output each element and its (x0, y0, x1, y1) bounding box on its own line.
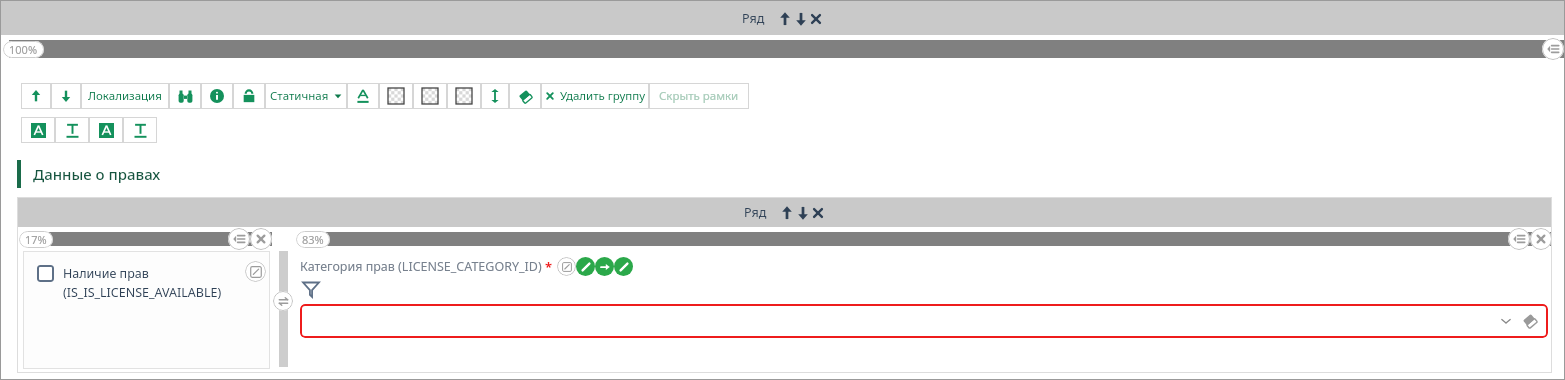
button[interactable]: Move down (795, 205, 811, 221)
button[interactable]: Move up (779, 205, 795, 221)
staticText: * (545, 258, 553, 276)
button[interactable]: Edit (576, 257, 595, 276)
button[interactable]: Скрыть рамки (649, 83, 749, 109)
button[interactable]: Swap columns (273, 291, 293, 311)
staticText: Данные о правах (33, 164, 161, 184)
button[interactable]: Background 3 (447, 83, 481, 109)
staticText: Ряд (742, 10, 765, 27)
button[interactable]: Move up (777, 11, 793, 27)
staticText: 17% (25, 232, 47, 247)
button[interactable]: Локализация (81, 83, 169, 109)
button[interactable]: Move down (51, 83, 81, 109)
button[interactable]: Font color (347, 83, 379, 109)
staticText: Локализация (88, 88, 162, 104)
staticText: Статичная (270, 88, 329, 104)
staticText: Удалить группу (560, 88, 646, 104)
button[interactable]: Edit field (245, 261, 266, 282)
staticText: (IS_IS_LICENSE_AVAILABLE) (63, 284, 222, 301)
button[interactable]: Close column (250, 228, 272, 250)
button[interactable]: Lock (233, 83, 265, 109)
button[interactable]: Move down (793, 11, 809, 27)
staticText: 83% (302, 232, 324, 247)
button[interactable]: Удалить группу (541, 83, 649, 109)
staticText: Скрыть рамки (659, 88, 739, 104)
button[interactable]: Remove row (809, 12, 823, 26)
button[interactable]: Text T (55, 117, 89, 143)
button[interactable]: Close column (1530, 228, 1552, 250)
button[interactable]: Bold A filled 2 (89, 117, 123, 143)
button[interactable]: Search (169, 83, 201, 109)
button[interactable]: Категория прав (300, 304, 1548, 338)
staticText: Наличие прав (63, 265, 149, 282)
button[interactable]: Column settings (228, 228, 250, 250)
staticText: Категория прав (LICENSE_CATEGORY_ID) (300, 258, 542, 275)
button[interactable]: Column settings (1542, 38, 1564, 60)
button[interactable]: Info (201, 83, 233, 109)
button[interactable]: Text T 2 (123, 117, 157, 143)
button[interactable]: Наличие прав (37, 265, 54, 282)
button[interactable]: Remove row (811, 206, 825, 220)
staticText: Ряд (744, 204, 767, 221)
button[interactable]: Column settings (1508, 228, 1530, 250)
staticText: 100% (9, 42, 38, 57)
button[interactable]: Edit field (557, 257, 576, 276)
button[interactable]: Filter (302, 280, 320, 298)
button[interactable]: Background 1 (379, 83, 413, 109)
button[interactable]: Статичная (265, 83, 347, 109)
button[interactable]: Go to (595, 257, 614, 276)
button[interactable]: Background 2 (413, 83, 447, 109)
button[interactable]: Move up (21, 83, 51, 109)
button[interactable]: Clear style (509, 83, 541, 109)
button[interactable]: Resize height (481, 83, 509, 109)
button[interactable]: Clear (614, 257, 633, 276)
button[interactable]: Bold A filled (21, 117, 55, 143)
